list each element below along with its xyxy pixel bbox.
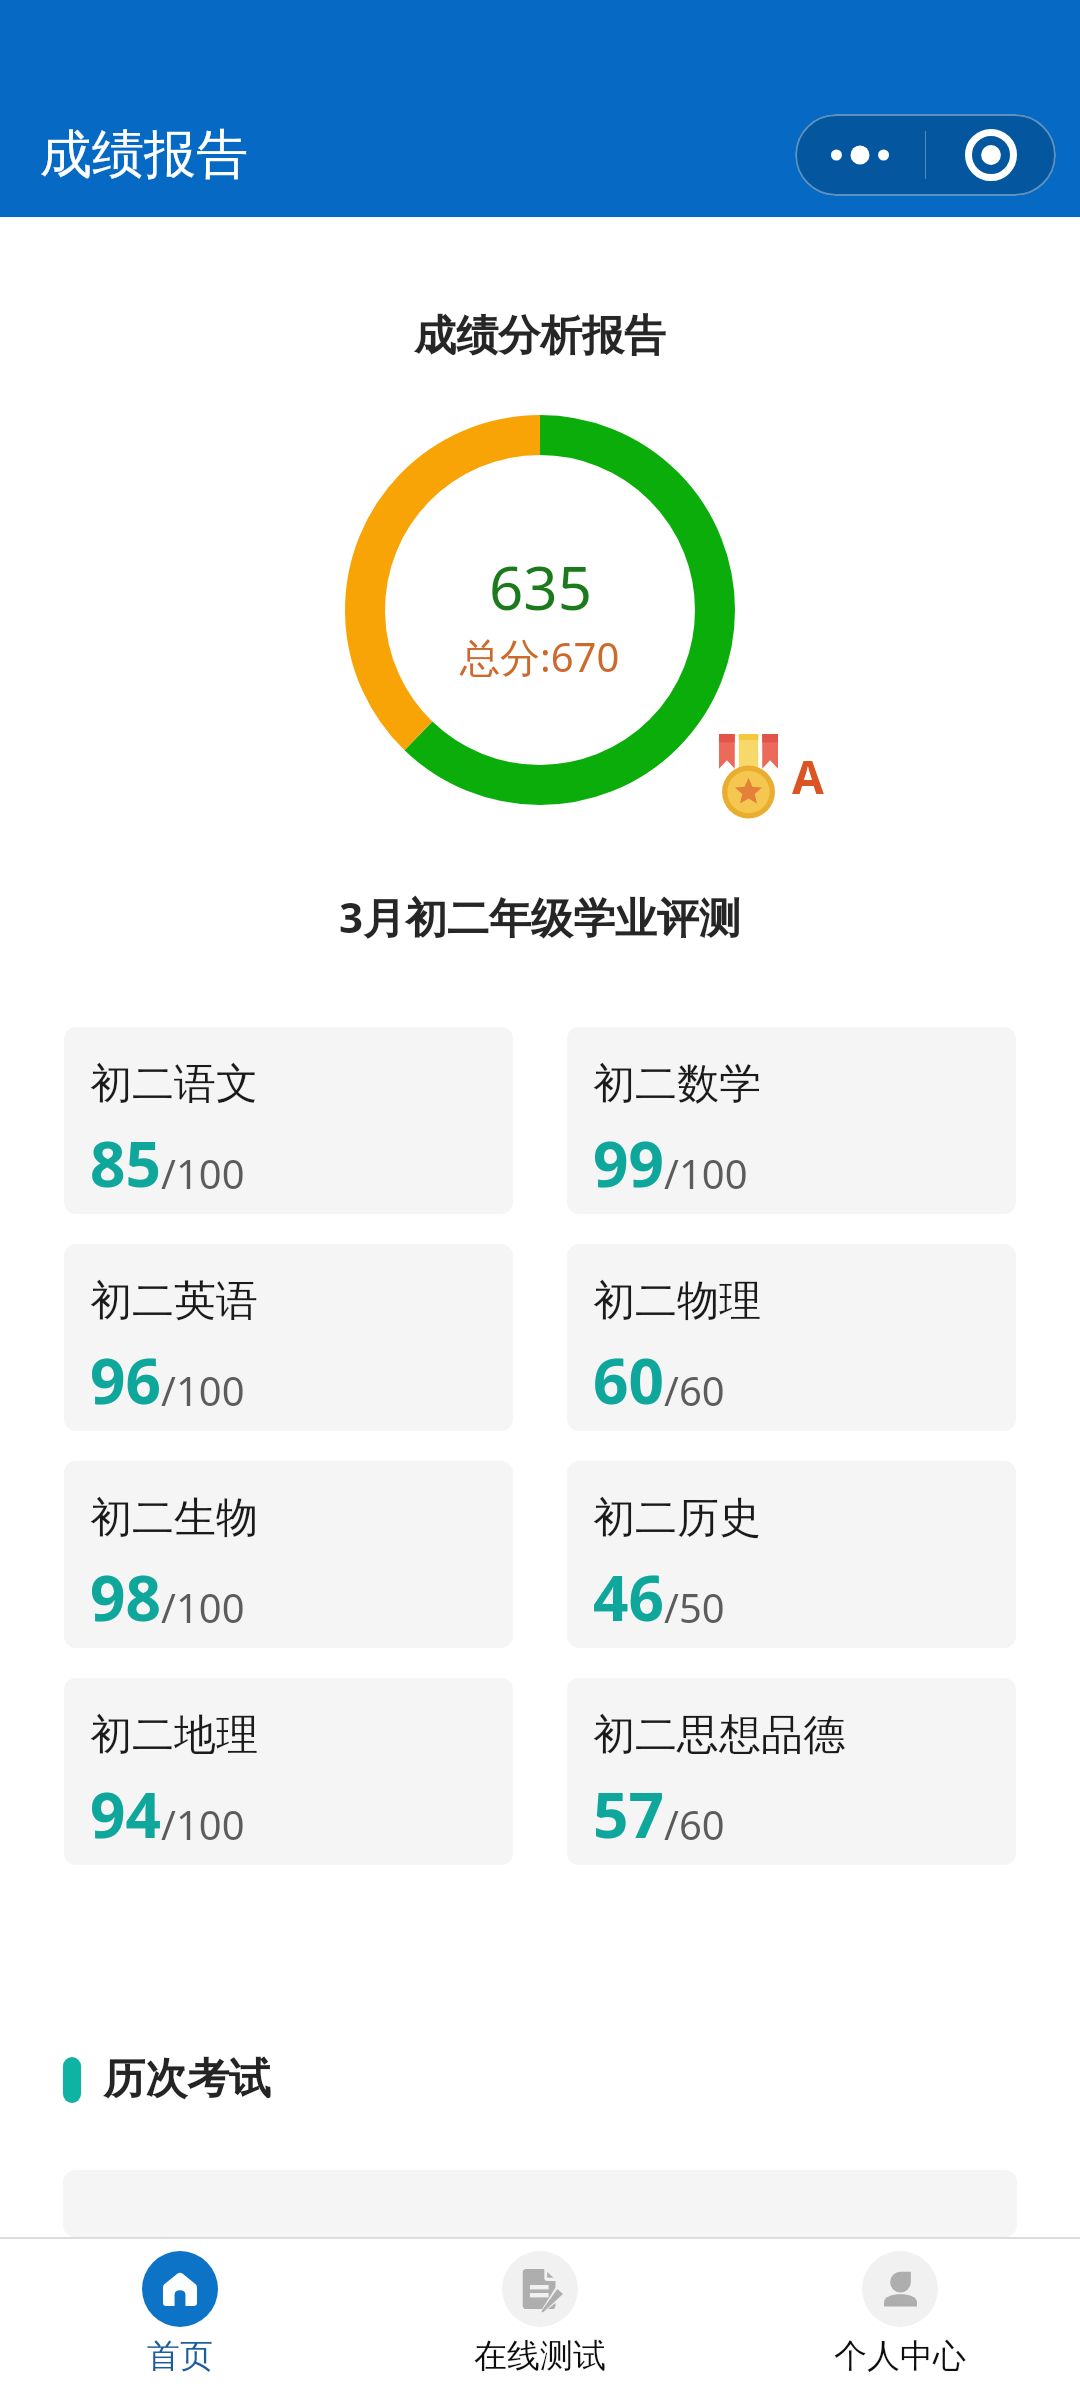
staticText: /100 — [664, 1146, 748, 1200]
staticText: 成绩分析报告 — [0, 310, 1080, 363]
staticText: 初二英语 — [90, 1275, 258, 1328]
button[interactable]: 初二历史 — [567, 1461, 1016, 1648]
staticText: 初二数学 — [593, 1058, 761, 1111]
staticText: 初二地理 — [90, 1709, 258, 1762]
staticText: A — [792, 745, 824, 808]
staticText: 初二思想品德 — [593, 1709, 845, 1762]
button[interactable]: 初二地理 — [64, 1678, 513, 1865]
button[interactable]: 初二英语 — [64, 1244, 513, 1431]
staticText: 历次考试 — [103, 2053, 271, 2106]
button[interactable]: 初二思想品德 — [567, 1678, 1016, 1865]
staticText: 成绩报告 — [40, 122, 248, 188]
button[interactable]: More options — [795, 114, 925, 196]
staticText: /60 — [664, 1797, 725, 1851]
staticText: 98 — [90, 1555, 161, 1639]
button[interactable]: 首页 — [0, 2239, 360, 2388]
button[interactable]: 初二生物 — [64, 1461, 513, 1648]
staticText: 总分:670 — [460, 629, 620, 684]
staticText: 99 — [593, 1121, 664, 1205]
staticText: /100 — [161, 1797, 245, 1851]
staticText: 个人中心 — [834, 2335, 966, 2377]
staticText: 3月初二年级学业评测 — [0, 888, 1080, 945]
button[interactable]: 个人中心 — [720, 2239, 1080, 2388]
staticText: /100 — [161, 1146, 245, 1200]
staticText: /60 — [664, 1363, 725, 1417]
staticText: 初二语文 — [90, 1058, 258, 1111]
staticText: 首页 — [147, 2335, 213, 2377]
staticText: 初二物理 — [593, 1275, 761, 1328]
staticText: 96 — [90, 1338, 161, 1422]
staticText: 57 — [593, 1772, 664, 1856]
staticText: /100 — [161, 1580, 245, 1634]
button[interactable]: 初二语文 — [64, 1027, 513, 1214]
staticText: /50 — [664, 1580, 725, 1634]
staticText: 635 — [489, 546, 592, 628]
staticText: 46 — [593, 1555, 664, 1639]
button[interactable]: Close mini program — [926, 114, 1056, 196]
staticText: /100 — [161, 1363, 245, 1417]
staticText: 初二历史 — [593, 1492, 761, 1545]
button[interactable]: 初二物理 — [567, 1244, 1016, 1431]
button[interactable]: 在线测试 — [360, 2239, 720, 2388]
staticText: 94 — [90, 1772, 161, 1856]
staticText: 初二生物 — [90, 1492, 258, 1545]
button[interactable]: 初二数学 — [567, 1027, 1016, 1214]
staticText: 在线测试 — [474, 2335, 606, 2377]
staticText: 60 — [593, 1338, 664, 1422]
staticText: 85 — [90, 1121, 161, 1205]
